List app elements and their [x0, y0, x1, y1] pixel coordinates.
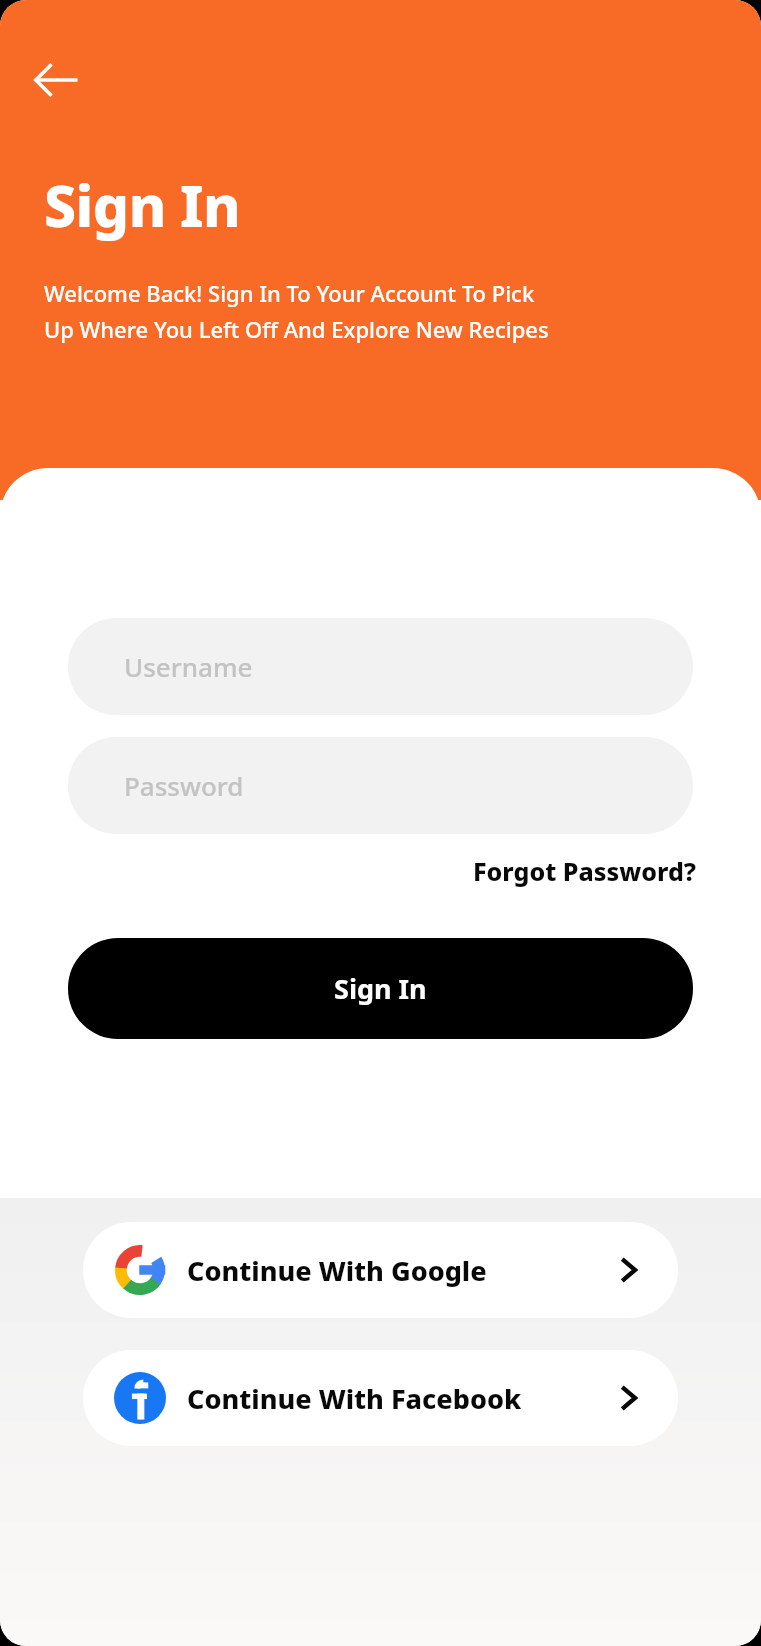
- staticText: Username: [124, 649, 253, 684]
- staticText: Continue With Facebook: [187, 1380, 522, 1417]
- button[interactable]: Sign In: [68, 938, 693, 1039]
- button[interactable]: Forgot Password?: [467, 846, 703, 896]
- staticText: Sign In: [44, 166, 241, 244]
- button[interactable]: Back: [28, 52, 84, 108]
- button[interactable]: Continue With Google: [83, 1222, 678, 1318]
- staticText: Welcome Back! Sign In To Your Account To…: [44, 278, 549, 344]
- button[interactable]: Password: [68, 737, 693, 834]
- staticText: Forgot Password?: [473, 854, 697, 888]
- button[interactable]: Continue With Facebook: [83, 1350, 678, 1446]
- staticText: Sign In: [334, 970, 427, 1007]
- staticText: Password: [124, 768, 244, 803]
- staticText: Continue With Google: [187, 1252, 487, 1289]
- button[interactable]: Username: [68, 618, 693, 715]
